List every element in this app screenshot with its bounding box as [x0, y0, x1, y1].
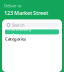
staticText: 123 Market Street	[4, 9, 48, 16]
staticText: Deliver to	[4, 3, 21, 8]
staticText: Search	[12, 22, 24, 27]
staticText: Categories	[5, 36, 26, 42]
staticText: Free delivery today	[7, 27, 31, 37]
